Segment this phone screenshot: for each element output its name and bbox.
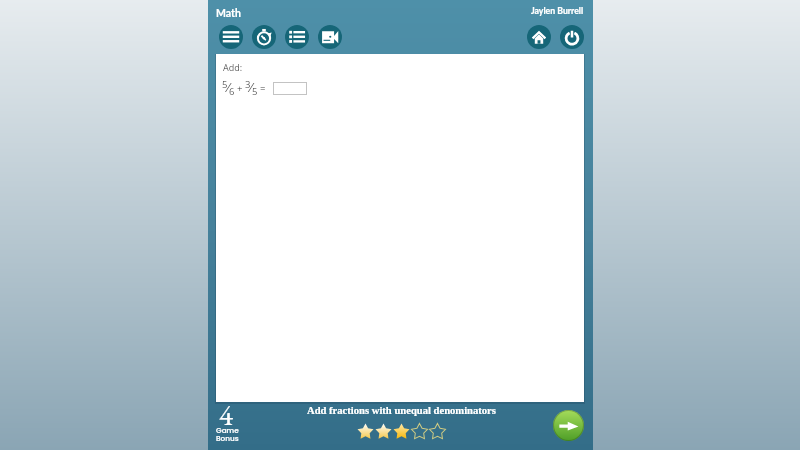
button[interactable]: Next: [553, 410, 584, 441]
staticText: Bonus: [216, 433, 239, 443]
button[interactable]: Timer: [252, 25, 276, 49]
staticText: Jaylen Burrell: [531, 5, 584, 15]
staticText: Game: [216, 425, 239, 435]
button[interactable]: Lesson list: [285, 25, 309, 49]
staticText: 5⁄6 + 3⁄5 =: [222, 78, 266, 98]
button[interactable]: Menu: [219, 25, 243, 49]
button[interactable]: Home: [527, 25, 551, 49]
staticText: Add fractions with unequal denominators: [307, 405, 496, 417]
staticText: Add:: [223, 61, 243, 73]
button[interactable]: Video: [318, 25, 342, 49]
staticText: 4: [219, 396, 233, 434]
button[interactable]: Power: [560, 25, 584, 49]
button[interactable]: Answer box: [273, 82, 307, 95]
staticText: Math: [216, 7, 241, 20]
